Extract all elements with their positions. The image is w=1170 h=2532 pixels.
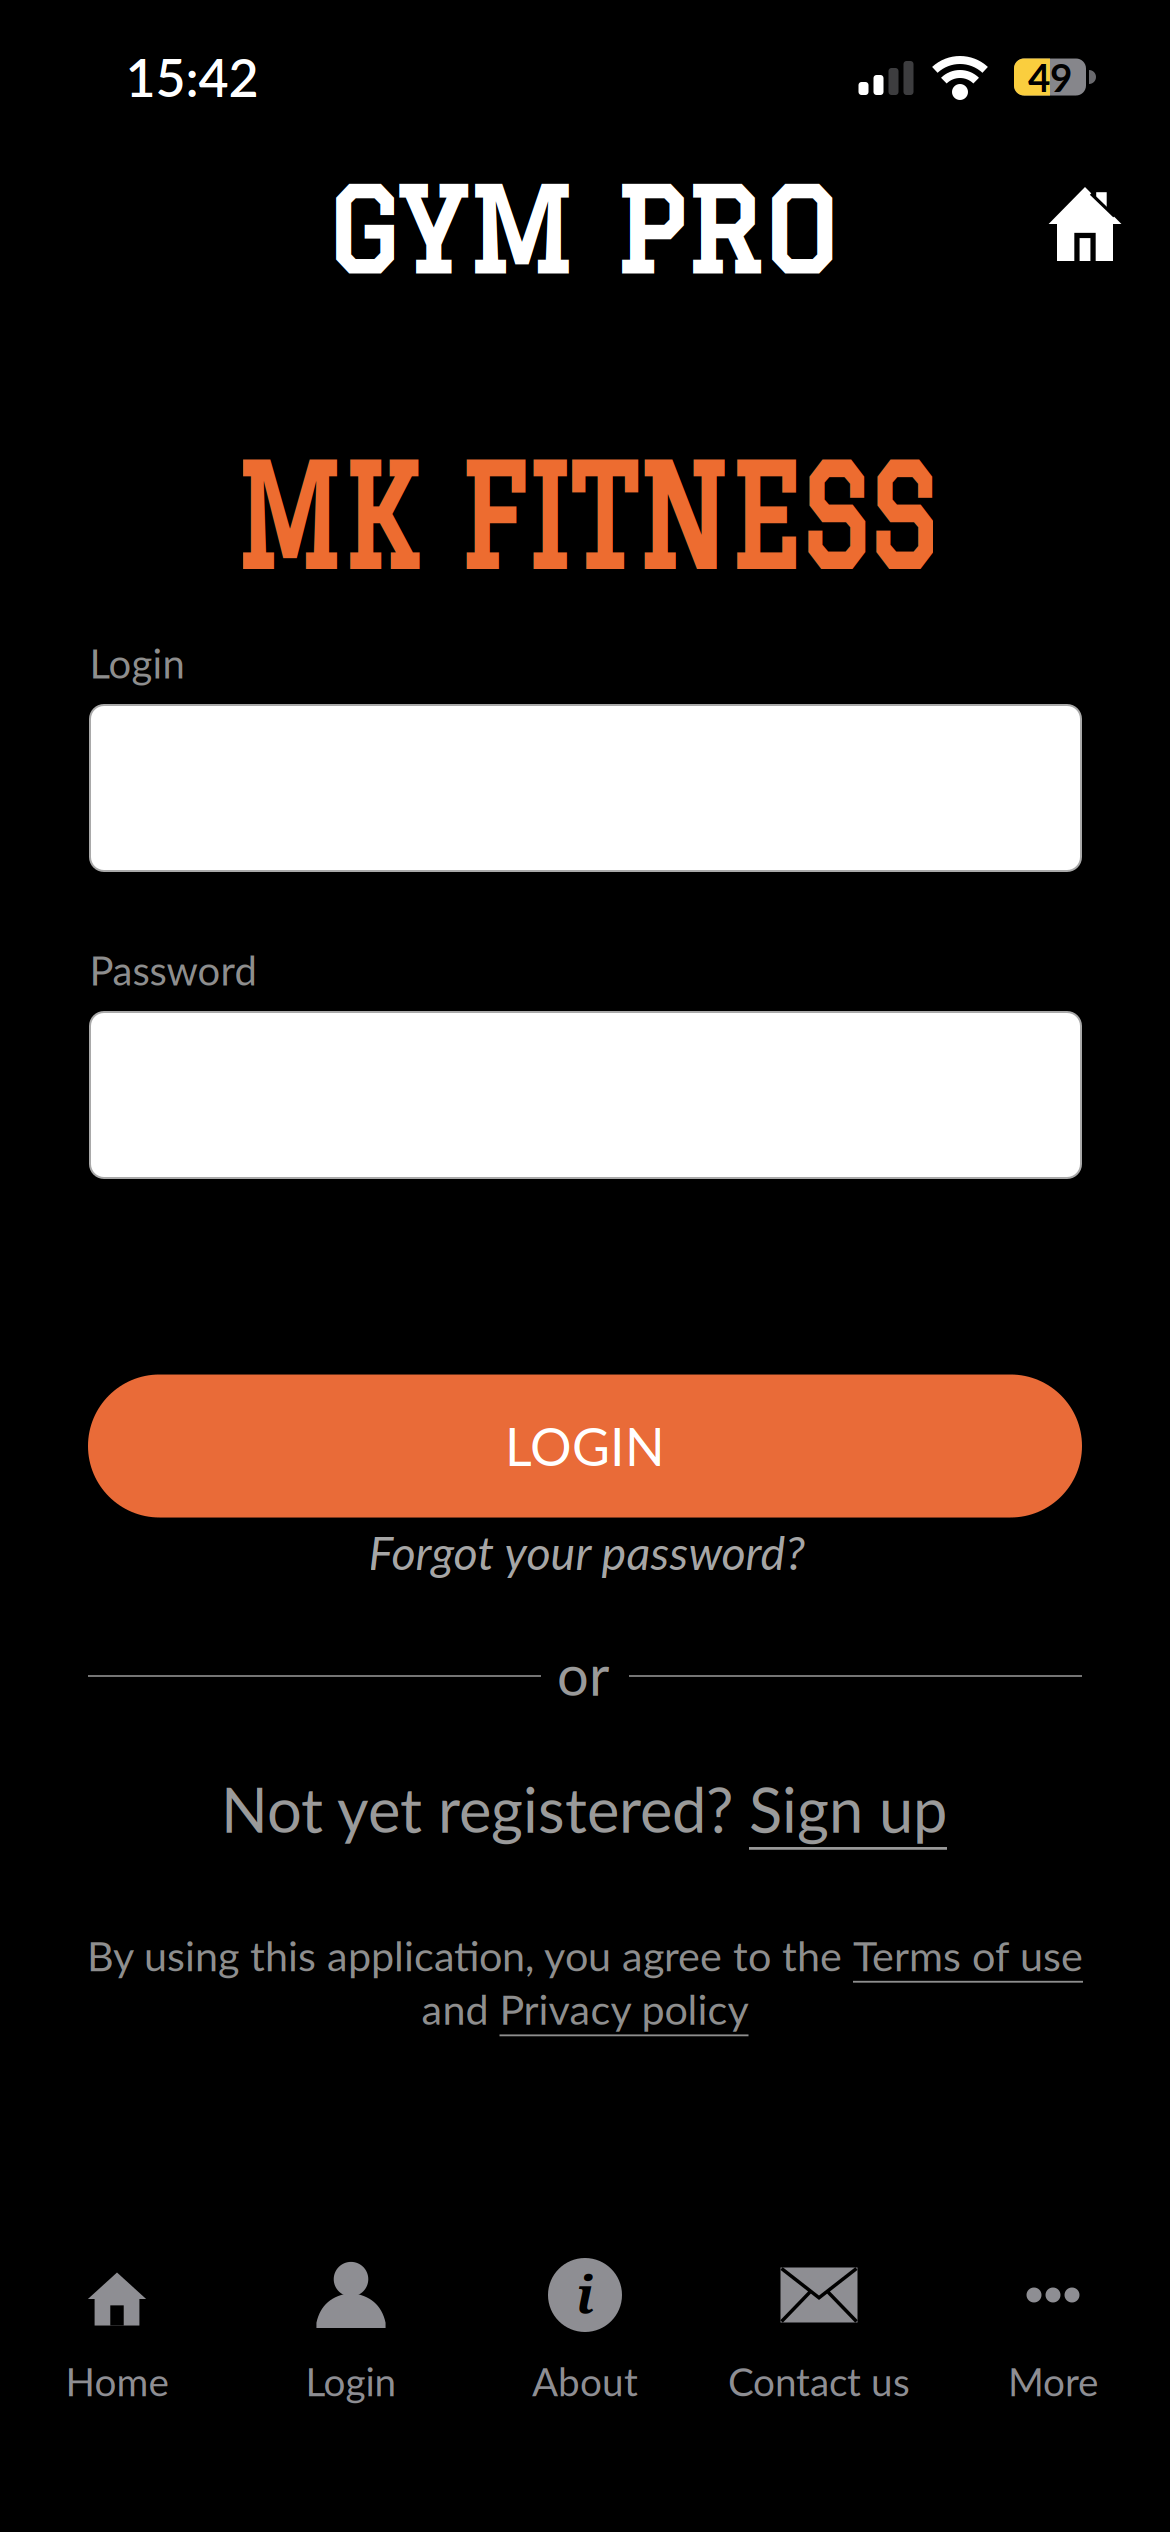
staticText: Forgot your password? <box>368 1524 805 1580</box>
staticText: About <box>532 2358 638 2404</box>
staticText: Privacy policy <box>499 1984 748 2034</box>
button[interactable]: Login <box>234 2220 468 2460</box>
button[interactable]: i <box>468 2220 702 2460</box>
staticText: or <box>557 1640 609 1708</box>
button[interactable]: Contact us <box>702 2220 936 2460</box>
staticText: MK FITNESS <box>156 437 1013 595</box>
button[interactable]: Password <box>90 1012 1081 1178</box>
button[interactable]: Forgot your password? <box>368 1524 805 1580</box>
staticText: LOGIN <box>505 1415 665 1477</box>
button[interactable]: Privacy policy <box>499 1984 748 2034</box>
button[interactable]: More <box>936 2220 1170 2460</box>
staticText: 15:42 <box>125 46 258 108</box>
staticText: Contact us <box>728 2358 910 2404</box>
staticText: By using this application, you agree to … <box>87 1930 853 1980</box>
button[interactable]: Terms of use <box>853 1930 1083 1980</box>
staticText: Not yet registered? <box>221 1772 749 1846</box>
staticText: i <box>576 2259 594 2328</box>
staticText: and <box>421 1984 499 2034</box>
staticText: GYM PRO <box>327 165 837 295</box>
staticText: Terms of use <box>853 1930 1083 1980</box>
button[interactable]: Home <box>0 2220 234 2460</box>
button[interactable]: LOGIN <box>88 1374 1082 1517</box>
staticText: Login <box>305 2358 396 2404</box>
button[interactable]: Home <box>1050 187 1120 261</box>
staticText: Home <box>65 2358 168 2404</box>
staticText: Sign up <box>749 1772 947 1846</box>
staticText: Password <box>89 946 256 994</box>
staticText: More <box>1008 2358 1098 2404</box>
button[interactable]: Sign up <box>749 1772 947 1846</box>
staticText: 49 <box>1028 54 1072 100</box>
staticText: Login <box>89 639 184 687</box>
button[interactable]: Login <box>90 705 1081 871</box>
